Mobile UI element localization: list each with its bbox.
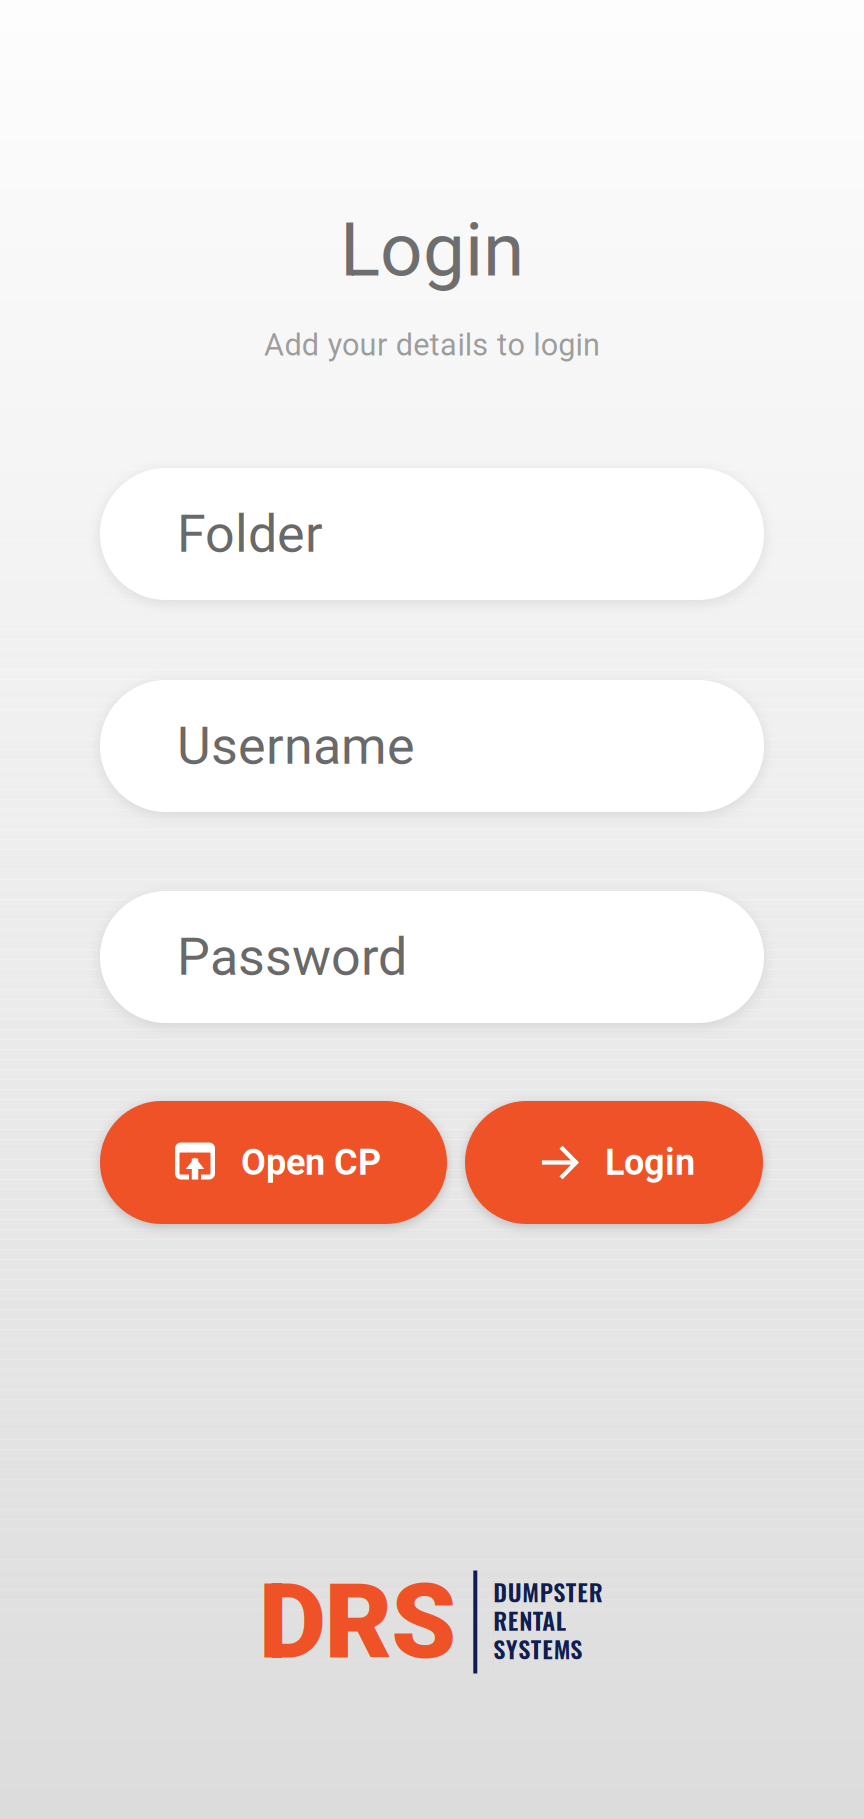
button[interactable]: Folder (100, 468, 764, 600)
staticText: RENTAL (493, 1602, 566, 1638)
staticText: Login (340, 206, 524, 294)
button[interactable]: Password (100, 891, 764, 1023)
staticText: Folder (177, 503, 323, 564)
staticText: Add your details to login (264, 327, 600, 363)
button[interactable]: Open CP (100, 1101, 447, 1224)
staticText: SYSTEMS (493, 1631, 582, 1666)
staticText: DUMPSTER (493, 1574, 603, 1609)
staticText: Username (177, 715, 415, 776)
staticText: Password (177, 926, 407, 987)
staticText: Login (605, 1141, 695, 1184)
button[interactable]: Username (100, 680, 764, 812)
button[interactable]: Login (465, 1101, 763, 1224)
staticText: Open CP (241, 1141, 381, 1184)
staticText: DRS (259, 1561, 456, 1683)
